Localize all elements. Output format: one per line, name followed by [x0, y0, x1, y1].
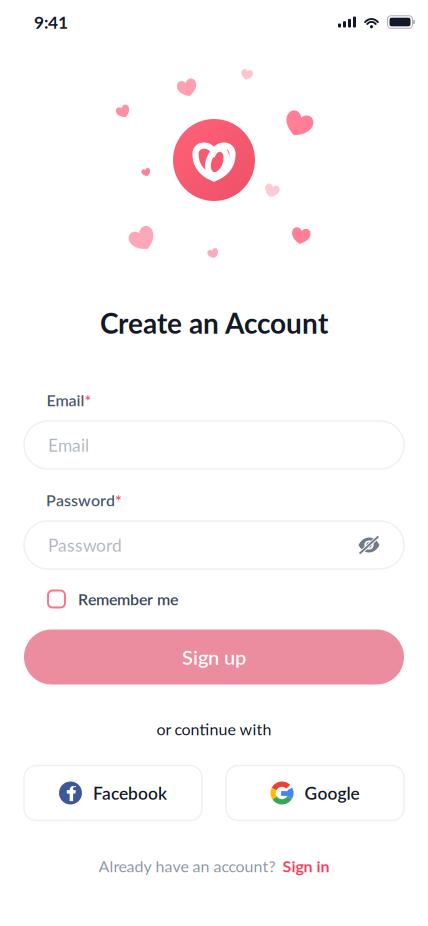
- staticText: Email: [46, 390, 84, 410]
- button[interactable]: Google: [226, 765, 404, 820]
- staticText: Sign up: [182, 645, 246, 669]
- staticText: *: [115, 490, 122, 510]
- button[interactable]: Password: [24, 521, 404, 569]
- button[interactable]: Facebook: [24, 765, 202, 820]
- button[interactable]: Sign up: [24, 629, 404, 684]
- staticText: or continue with: [156, 719, 271, 739]
- button[interactable]: Email: [24, 421, 404, 469]
- staticText: Password: [46, 490, 115, 510]
- staticText: Google: [304, 783, 359, 803]
- staticText: Password: [48, 535, 122, 555]
- button[interactable]: Remember me: [46, 583, 180, 615]
- staticText: Remember me: [78, 589, 178, 609]
- staticText: Sign in: [282, 856, 329, 876]
- staticText: Facebook: [93, 783, 167, 803]
- staticText: Email: [48, 435, 89, 455]
- staticText: 9:41: [34, 12, 68, 32]
- staticText: *: [84, 390, 91, 410]
- staticText: Create an Account: [100, 306, 328, 340]
- button[interactable]: Sign in: [282, 856, 329, 876]
- staticText: Already have an account?: [98, 856, 275, 876]
